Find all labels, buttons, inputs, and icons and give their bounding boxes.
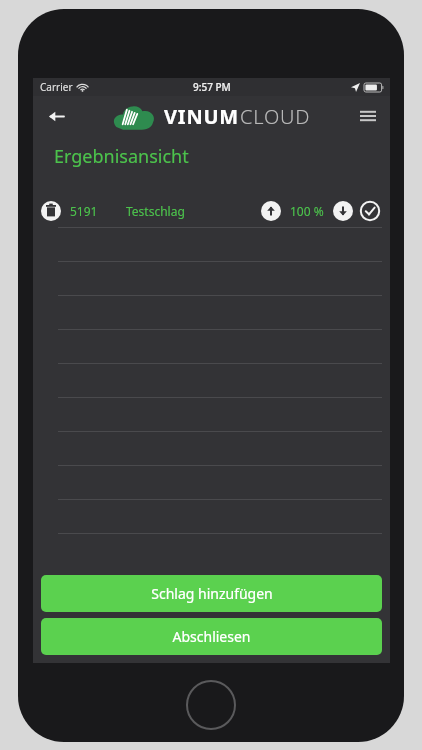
staticText: Carrier — [40, 80, 73, 94]
staticText: 5191 — [70, 203, 98, 219]
button[interactable]: Back — [39, 99, 73, 133]
button[interactable]: Menu — [352, 100, 384, 132]
staticText: VINUM — [164, 103, 240, 130]
button[interactable]: Abschliesen — [41, 618, 382, 655]
button[interactable]: Delete — [33, 194, 390, 228]
button[interactable]: Schlag hinzufügen — [41, 575, 382, 612]
staticText: Testschlag — [126, 203, 185, 219]
button[interactable]: Decrease — [333, 201, 353, 221]
button[interactable]: Confirm — [360, 201, 380, 221]
button[interactable]: Increase — [261, 201, 281, 221]
staticText: 100 % — [290, 203, 324, 219]
staticText: CLOUD — [240, 103, 311, 130]
staticText: Ergebnisansicht — [54, 144, 189, 169]
button[interactable]: Delete — [41, 201, 61, 221]
staticText: Schlag hinzufügen — [151, 584, 273, 603]
staticText: Abschliesen — [172, 627, 251, 646]
staticText: 9:57 PM — [193, 80, 231, 94]
